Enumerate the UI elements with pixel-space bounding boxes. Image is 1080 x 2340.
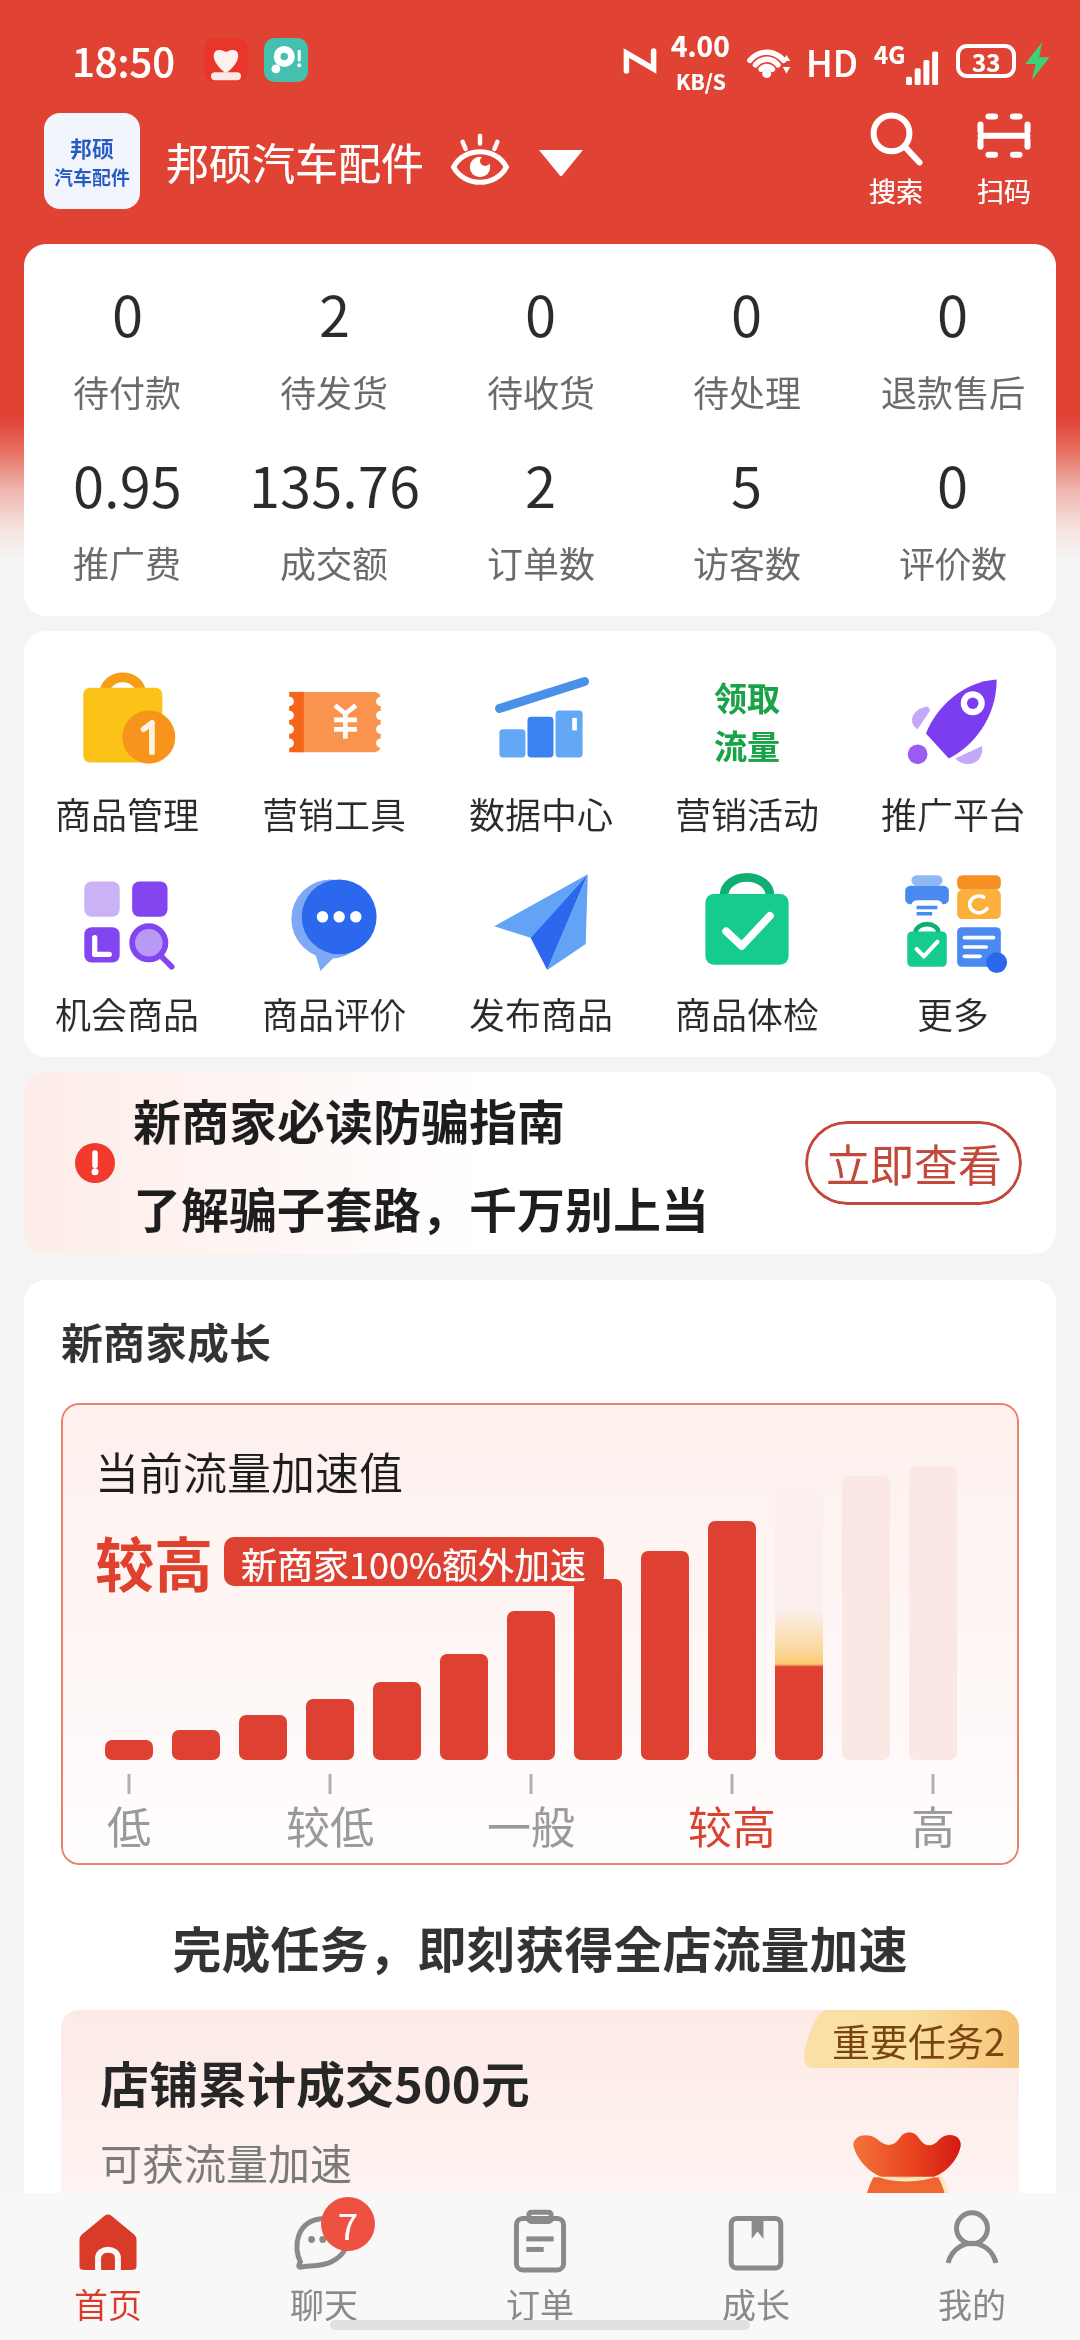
button[interactable]: 成长 — [648, 2193, 864, 2340]
staticText: 商品评价 — [262, 987, 407, 1039]
button[interactable]: 2 — [231, 272, 438, 417]
staticText: 访客数 — [693, 536, 802, 588]
staticText: 更多 — [917, 987, 990, 1039]
staticText: 待处理 — [693, 365, 802, 417]
button[interactable]: 135.76 — [231, 443, 438, 588]
button[interactable]: 0 — [24, 272, 231, 417]
staticText: 0 — [731, 272, 763, 353]
button[interactable]: 更多 — [850, 869, 1056, 1039]
staticText: 成交额 — [280, 536, 389, 588]
staticText: 首页 — [74, 2279, 142, 2328]
staticText: 完成任务，即刻获得全店流量加速 — [61, 1911, 1019, 1982]
button[interactable]: 营销工具 — [231, 669, 438, 839]
staticText: 推广平台 — [881, 787, 1026, 839]
button[interactable]: 0 — [850, 272, 1056, 417]
button[interactable]: 机会商品 — [24, 869, 231, 1039]
button[interactable]: 0 — [644, 272, 850, 417]
staticText: 成长 — [722, 2279, 790, 2328]
button[interactable]: 新商家必读防骗指南 — [24, 1072, 1056, 1254]
button[interactable]: 商品评价 — [231, 869, 438, 1039]
staticText: 新商家成长 — [61, 1310, 272, 1371]
staticText: 领取 — [714, 673, 780, 721]
staticText: 4G — [874, 36, 906, 71]
button[interactable]: 发布商品 — [438, 869, 644, 1039]
button[interactable]: 首页 — [0, 2193, 216, 2340]
staticText: HD — [806, 35, 858, 87]
staticText: 33 — [972, 44, 1001, 78]
button[interactable]: 邦硕 — [44, 113, 140, 209]
staticText: 2 — [525, 443, 557, 524]
button[interactable]: 5 — [644, 443, 850, 588]
staticText: 较高 — [688, 1793, 776, 1857]
button[interactable]: 2 — [438, 443, 644, 588]
button[interactable]: 我的 — [864, 2193, 1080, 2340]
staticText: 营销活动 — [675, 787, 820, 839]
staticText: 较高 — [95, 1519, 214, 1604]
staticText: 汽车配件 — [54, 163, 131, 191]
button[interactable]: 搜索 — [864, 111, 928, 210]
staticText: 商品管理 — [55, 787, 200, 839]
button[interactable]: 商品管理 — [24, 669, 231, 839]
staticText: 当前流量加速值 — [95, 1439, 403, 1503]
staticText: 较低 — [286, 1793, 374, 1857]
staticText: 了解骗子套路，千万别上当 — [133, 1172, 710, 1242]
staticText: 退款售后 — [881, 365, 1026, 417]
button[interactable]: 7 — [216, 2193, 432, 2340]
button[interactable]: Preview — [450, 131, 510, 191]
button[interactable]: 数据中心 — [438, 669, 644, 839]
staticText: 待收货 — [487, 365, 596, 417]
staticText: 邦硕 — [70, 131, 115, 163]
staticText: 2 — [319, 272, 351, 353]
staticText: 推广费 — [73, 536, 182, 588]
button[interactable]: 重要任务2 — [61, 2010, 1019, 2240]
staticText: 商品体检 — [675, 987, 820, 1039]
staticText: 低 — [107, 1793, 151, 1857]
button[interactable]: 扫码 — [972, 111, 1036, 210]
button[interactable]: 立即查看 — [805, 1121, 1022, 1205]
staticText: 店铺累计成交500元 — [100, 2046, 530, 2117]
staticText: 搜索 — [869, 171, 923, 210]
staticText: 流量 — [714, 721, 780, 769]
button[interactable]: 订单 — [432, 2193, 648, 2340]
staticText: 待发货 — [280, 365, 389, 417]
staticText: 机会商品 — [55, 987, 200, 1039]
staticText: 待付款 — [73, 365, 182, 417]
staticText: 新商家100%额外加速 — [241, 1537, 587, 1586]
staticText: 数据中心 — [469, 787, 614, 839]
button[interactable]: 0 — [438, 272, 644, 417]
staticText: 0.95 — [73, 443, 182, 524]
staticText: 0 — [937, 272, 969, 353]
staticText: 高 — [911, 1793, 955, 1857]
staticText: 0 — [937, 443, 969, 524]
staticText: 135.76 — [249, 443, 420, 524]
button[interactable]: 0.95 — [24, 443, 231, 588]
staticText: 7 — [338, 2198, 358, 2250]
staticText: 可获流量加速 — [100, 2131, 353, 2192]
staticText: 18:50 — [72, 31, 176, 89]
staticText: 一般 — [487, 1793, 575, 1857]
button[interactable]: 商品体检 — [644, 869, 850, 1039]
staticText: 4.00 — [671, 25, 730, 66]
staticText: KB/S — [676, 66, 726, 96]
staticText: 0 — [112, 272, 144, 353]
button[interactable]: 推广平台 — [850, 669, 1056, 839]
staticText: 订单数 — [487, 536, 596, 588]
staticText: 订单 — [506, 2279, 574, 2328]
staticText: 扫码 — [977, 171, 1031, 210]
staticText: 0 — [525, 272, 557, 353]
staticText: 5 — [731, 443, 763, 524]
button[interactable]: 0 — [850, 443, 1056, 588]
staticText: 聊天 — [290, 2279, 358, 2328]
staticText: 立即查看 — [826, 1131, 1002, 1195]
staticText: 邦硕汽车配件 — [166, 130, 424, 192]
staticText: 发布商品 — [469, 987, 614, 1039]
staticText: 重要任务2 — [832, 2012, 1006, 2067]
button[interactable]: 领取 — [644, 669, 850, 839]
staticText: 我的 — [938, 2279, 1006, 2328]
button[interactable]: Expand — [536, 144, 586, 178]
staticText: 营销工具 — [262, 787, 407, 839]
staticText: 新商家必读防骗指南 — [133, 1084, 566, 1154]
staticText: 评价数 — [899, 536, 1008, 588]
